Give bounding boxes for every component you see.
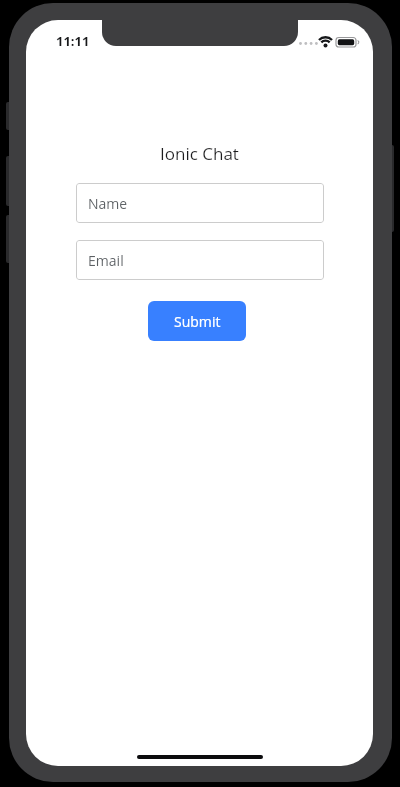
button[interactable]: Submit — [148, 301, 246, 341]
staticText: Name — [88, 194, 128, 213]
staticText: Email — [88, 251, 124, 270]
button[interactable]: Name — [76, 183, 324, 223]
staticText: Submit — [174, 312, 221, 331]
staticText: Ionic Chat — [160, 142, 239, 165]
staticText: 11:11 — [56, 32, 90, 50]
button[interactable]: Email — [76, 240, 324, 280]
